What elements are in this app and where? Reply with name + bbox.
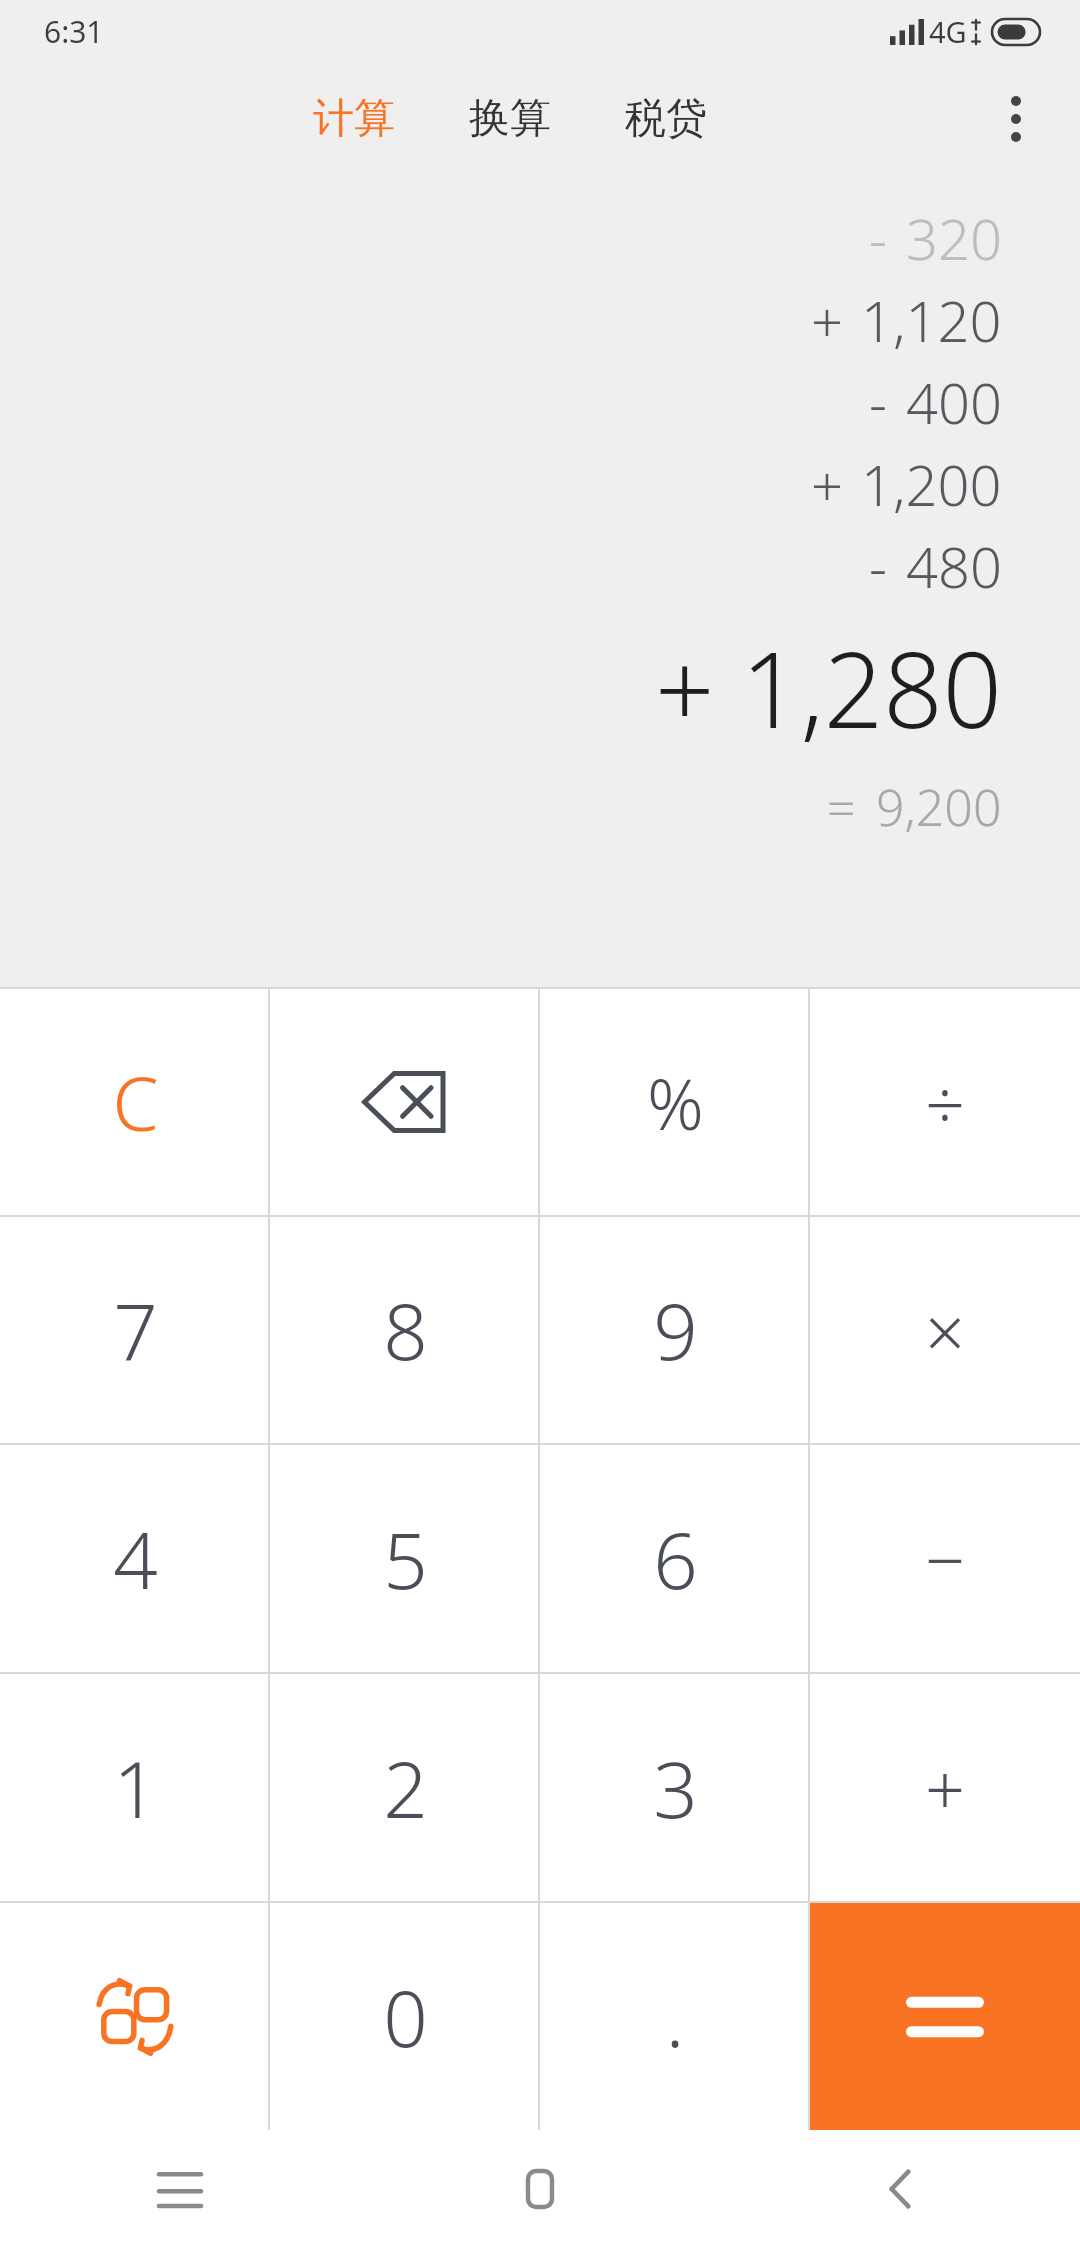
button[interactable]: −: [810, 1445, 1080, 1672]
staticText: 400: [906, 364, 1002, 440]
staticText: 税贷: [625, 93, 707, 145]
button[interactable]: 4: [0, 1445, 270, 1672]
button[interactable]: Home: [360, 2130, 720, 2248]
staticText: 480: [906, 528, 1002, 604]
staticText: 6: [653, 1506, 698, 1612]
staticText: -: [869, 364, 888, 440]
button[interactable]: ×: [810, 1217, 1080, 1443]
staticText: 0: [383, 1964, 428, 2070]
staticText: +: [811, 446, 843, 522]
button[interactable]: 2: [270, 1674, 540, 1901]
staticText: 5: [383, 1506, 428, 1612]
button[interactable]: More options: [974, 77, 1058, 161]
button[interactable]: 税贷: [617, 83, 715, 155]
staticText: %: [647, 1055, 704, 1150]
button[interactable]: 5: [270, 1445, 540, 1672]
button[interactable]: +: [810, 1674, 1080, 1901]
staticText: +: [811, 282, 843, 358]
button[interactable]: .: [540, 1903, 810, 2130]
button[interactable]: 换算: [461, 83, 559, 155]
staticText: −: [925, 1511, 965, 1606]
staticText: 4G: [929, 12, 967, 51]
button[interactable]: 0: [270, 1903, 540, 2130]
staticText: 7: [113, 1277, 158, 1383]
staticText: +: [925, 1740, 965, 1835]
staticText: 4: [113, 1506, 158, 1612]
staticText: 计算: [313, 93, 395, 145]
button[interactable]: C: [0, 989, 270, 1215]
button[interactable]: 3: [540, 1674, 810, 1901]
staticText: .: [665, 1964, 685, 2070]
button[interactable]: Backspace: [270, 989, 540, 1215]
button[interactable]: 1: [0, 1674, 270, 1901]
staticText: 1,200: [861, 446, 1002, 522]
button[interactable]: 6: [540, 1445, 810, 1672]
staticText: 9,200: [876, 773, 1002, 841]
staticText: 1: [113, 1735, 158, 1841]
staticText: 9: [653, 1277, 698, 1383]
staticText: 1,280: [741, 617, 1002, 759]
staticText: ×: [925, 1283, 965, 1378]
staticText: +: [655, 617, 715, 759]
staticText: 320: [906, 200, 1002, 276]
button[interactable]: %: [540, 989, 810, 1215]
staticText: =: [827, 773, 856, 841]
staticText: 2: [383, 1735, 428, 1841]
button[interactable]: ÷: [810, 989, 1080, 1215]
staticText: 3: [653, 1735, 698, 1841]
button[interactable]: 8: [270, 1217, 540, 1443]
button[interactable]: Unit converter: [0, 1903, 270, 2130]
button[interactable]: 计算: [305, 83, 403, 155]
staticText: -: [869, 528, 888, 604]
button[interactable]: 7: [0, 1217, 270, 1443]
button[interactable]: 9: [540, 1217, 810, 1443]
button[interactable]: Back: [720, 2130, 1080, 2248]
staticText: 1,120: [861, 282, 1002, 358]
staticText: ÷: [925, 1055, 965, 1150]
staticText: 换算: [469, 93, 551, 145]
staticText: C: [112, 1052, 159, 1153]
staticText: -: [869, 200, 888, 276]
staticText: 6:31: [44, 11, 104, 52]
staticText: 8: [383, 1277, 428, 1383]
button[interactable]: Equals: [810, 1903, 1080, 2130]
button[interactable]: Recent apps: [0, 2130, 360, 2248]
